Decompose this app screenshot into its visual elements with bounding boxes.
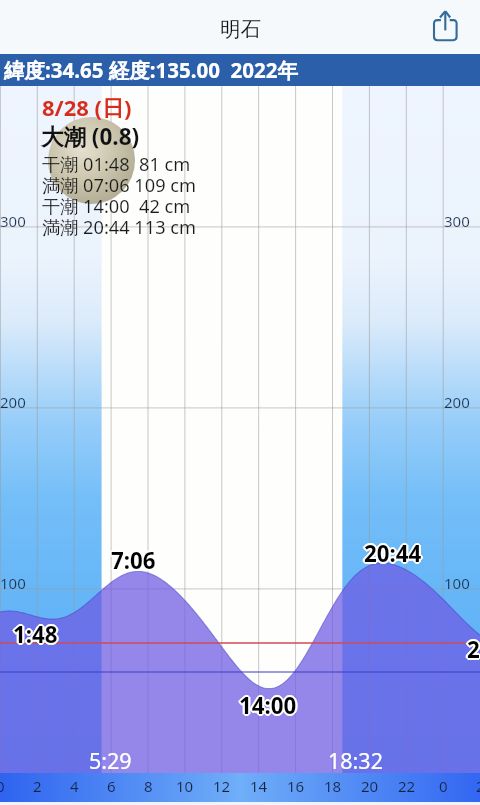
staticText: 20:44 bbox=[362, 538, 420, 568]
staticText: 14:00 bbox=[239, 692, 297, 722]
button[interactable]: Share bbox=[424, 0, 468, 54]
staticText: 14:00 bbox=[238, 691, 296, 721]
staticText: 7:06 bbox=[112, 544, 157, 574]
button[interactable]: 緯度:34.65 経度:135.00 2022年 bbox=[0, 54, 480, 86]
staticText: 2:17 bbox=[466, 635, 480, 665]
staticText: 18:32 bbox=[328, 746, 383, 775]
staticText: 14:00 bbox=[238, 689, 296, 719]
staticText: 7:06 bbox=[111, 543, 156, 573]
staticText: 2:17 bbox=[469, 634, 480, 664]
staticText: 1:48 bbox=[13, 621, 58, 651]
staticText: 2:17 bbox=[468, 635, 480, 665]
staticText: 1:48 bbox=[12, 620, 57, 650]
staticText: 14 bbox=[250, 776, 268, 796]
staticText: 8/28 (日) bbox=[42, 92, 132, 122]
staticText: 100 bbox=[444, 573, 470, 593]
staticText: 20 bbox=[361, 776, 379, 796]
staticText: 1:48 bbox=[12, 618, 57, 648]
staticText: 7:06 bbox=[111, 545, 156, 575]
staticText: 200 bbox=[444, 392, 470, 412]
staticText: 14:00 bbox=[239, 688, 297, 718]
staticText: 8 bbox=[144, 776, 153, 796]
staticText: 16 bbox=[287, 776, 305, 796]
staticText: 7:06 bbox=[110, 546, 155, 576]
staticText: 1:48 bbox=[13, 617, 58, 647]
staticText: 12 bbox=[213, 776, 231, 796]
staticText: 300 bbox=[444, 211, 470, 231]
staticText: 14:00 bbox=[237, 690, 295, 720]
staticText: 20:44 bbox=[363, 537, 421, 567]
staticText: 20:44 bbox=[363, 539, 421, 569]
staticText: 1:48 bbox=[13, 619, 58, 649]
staticText: 14:00 bbox=[240, 691, 298, 721]
staticText: 1:48 bbox=[11, 619, 56, 649]
staticText: 14:00 bbox=[239, 690, 297, 720]
staticText: 20:44 bbox=[364, 538, 422, 568]
staticText: 明石 bbox=[220, 16, 261, 42]
staticText: 7:06 bbox=[110, 544, 155, 574]
staticText: 4 bbox=[70, 776, 79, 796]
staticText: 2:17 bbox=[468, 633, 480, 663]
staticText: 5:29 bbox=[89, 746, 132, 775]
staticText: 1:48 bbox=[14, 618, 59, 648]
staticText: 2:17 bbox=[467, 634, 480, 664]
staticText: 200 bbox=[0, 392, 26, 412]
staticText: 7:06 bbox=[113, 545, 158, 575]
staticText: 2:17 bbox=[467, 632, 480, 662]
staticText: 20:44 bbox=[364, 540, 422, 570]
staticText: 2:17 bbox=[465, 634, 480, 664]
staticText: 14:00 bbox=[241, 690, 299, 720]
staticText: 緯度:34.65 経度:135.00 2022年 bbox=[4, 56, 298, 84]
staticText: 7:06 bbox=[109, 545, 154, 575]
staticText: 0 bbox=[439, 776, 448, 796]
staticText: 2:17 bbox=[467, 636, 480, 666]
staticText: 2:17 bbox=[466, 633, 480, 663]
staticText: 干潮 01:48 81 cm bbox=[42, 152, 191, 177]
staticText: 2 bbox=[33, 776, 42, 796]
staticText: 7:06 bbox=[112, 546, 157, 576]
staticText: 2 bbox=[476, 776, 480, 796]
staticText: 7:06 bbox=[111, 547, 156, 577]
staticText: 干潮 14:00 42 cm bbox=[42, 194, 191, 219]
staticText: 20:44 bbox=[364, 536, 422, 566]
staticText: 0 bbox=[0, 776, 5, 796]
staticText: 1:48 bbox=[14, 620, 59, 650]
staticText: 100 bbox=[0, 573, 26, 593]
staticText: 満潮 20:44 113 cm bbox=[42, 215, 196, 240]
staticText: 満潮 07:06 109 cm bbox=[42, 173, 196, 198]
staticText: 20:44 bbox=[365, 539, 423, 569]
staticText: 1:48 bbox=[15, 619, 60, 649]
staticText: 20:44 bbox=[365, 537, 423, 567]
staticText: 300 bbox=[0, 211, 26, 231]
staticText: 10 bbox=[176, 776, 194, 796]
staticText: 6 bbox=[107, 776, 116, 796]
staticText: 大潮 (0.8) bbox=[41, 121, 140, 152]
staticText: 18 bbox=[324, 776, 342, 796]
staticText: 22 bbox=[398, 776, 416, 796]
staticText: 14:00 bbox=[240, 689, 298, 719]
staticText: 20:44 bbox=[366, 538, 424, 568]
